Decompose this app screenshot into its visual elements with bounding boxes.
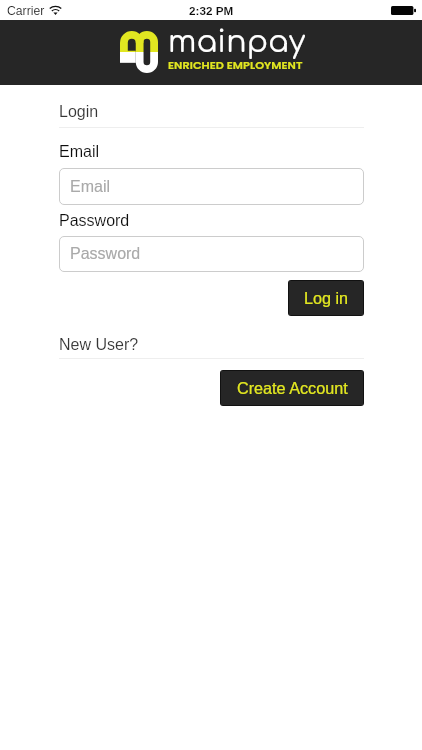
other: Wi-Fi signal xyxy=(50,6,61,15)
button[interactable]: Password xyxy=(59,236,364,272)
button[interactable]: Log in xyxy=(289,281,363,315)
staticText: Email xyxy=(70,178,111,196)
staticText: Password xyxy=(70,245,141,263)
staticText: Carrier xyxy=(7,4,45,18)
staticText: New User? xyxy=(59,336,139,354)
staticText: ENRICHED EMPLOYMENT xyxy=(168,57,303,73)
staticText: Login xyxy=(59,103,99,121)
button[interactable]: Email xyxy=(59,168,364,205)
staticText: Log in xyxy=(304,289,349,307)
staticText: 2:32 PM xyxy=(189,4,234,17)
staticText: Create Account xyxy=(237,379,348,397)
staticText: mainpay xyxy=(168,26,306,59)
other: Battery full xyxy=(391,6,416,15)
staticText: Password xyxy=(59,212,130,230)
staticText: Email xyxy=(59,143,100,161)
button[interactable]: Create Account xyxy=(221,371,363,405)
